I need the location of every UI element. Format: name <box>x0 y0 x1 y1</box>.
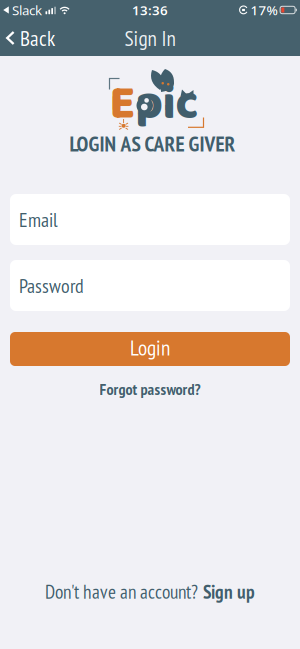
staticText: LOGIN AS CARE GIVER <box>69 130 235 157</box>
button[interactable]: Sign up <box>203 579 255 604</box>
button[interactable]: Email <box>10 194 290 245</box>
button[interactable]: Back <box>0 20 63 56</box>
staticText: Don't have an account? <box>45 579 198 604</box>
staticText: 13:36 <box>132 1 168 19</box>
staticText: pic <box>135 67 198 142</box>
button[interactable]: Password <box>10 260 290 311</box>
staticText: Forgot password? <box>99 379 200 399</box>
staticText: Back <box>20 24 55 52</box>
staticText: Login <box>130 334 170 361</box>
button[interactable]: Forgot password? <box>99 379 200 399</box>
button[interactable]: Login <box>10 332 290 366</box>
staticText: Password <box>19 273 84 298</box>
staticText: E <box>109 67 135 142</box>
staticText: Sign up <box>203 579 255 604</box>
staticText: Sign In <box>124 24 175 52</box>
staticText: Slack <box>12 1 42 19</box>
staticText: 17% <box>251 1 278 19</box>
staticText: Email <box>19 207 58 232</box>
